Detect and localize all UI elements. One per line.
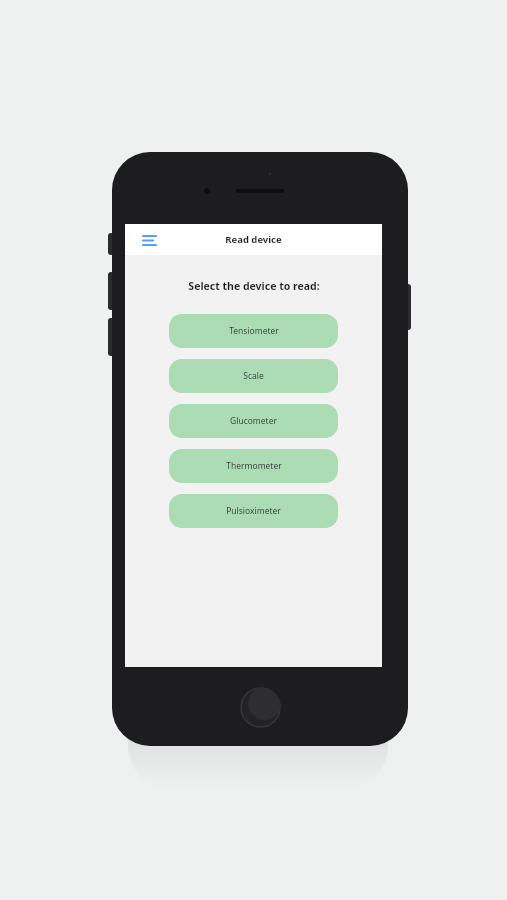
staticText: Glucometer: [230, 415, 277, 427]
button[interactable]: Open navigation menu: [138, 229, 160, 251]
staticText: Thermometer: [226, 460, 282, 472]
button[interactable]: Pulsioximeter: [169, 494, 338, 528]
staticText: Select the device to read:: [188, 279, 320, 293]
staticText: Pulsioximeter: [226, 505, 281, 517]
staticText: Tensiometer: [229, 325, 279, 337]
staticText: Scale: [243, 370, 264, 382]
button[interactable]: Thermometer: [169, 449, 338, 483]
button[interactable]: Glucometer: [169, 404, 338, 438]
staticText: Read device: [225, 233, 282, 246]
button[interactable]: Tensiometer: [169, 314, 338, 348]
button[interactable]: Scale: [169, 359, 338, 393]
